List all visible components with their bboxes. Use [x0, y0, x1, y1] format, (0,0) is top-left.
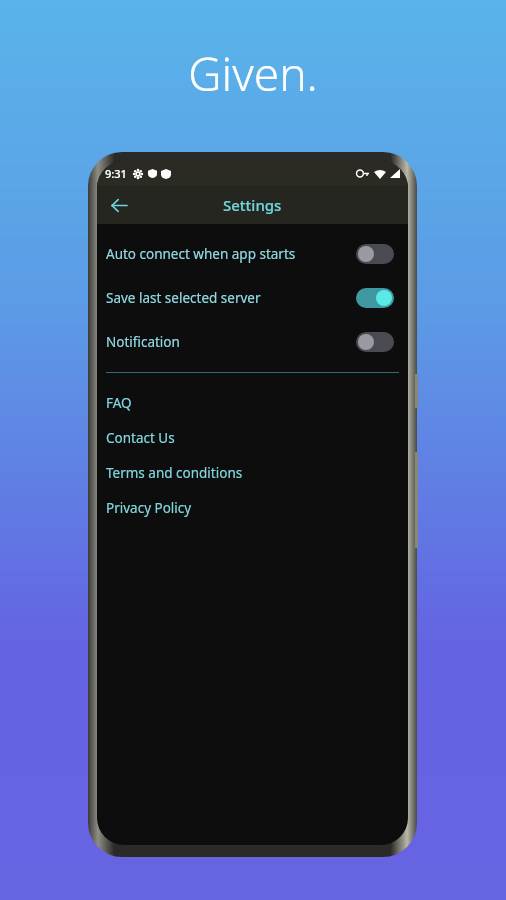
button[interactable]: FAQ [97, 385, 408, 420]
staticText: Save last selected server [106, 289, 261, 307]
button[interactable]: Back [103, 190, 133, 220]
staticText: Privacy Policy [106, 499, 192, 517]
staticText: 9:31 [105, 166, 127, 181]
staticText: Settings [223, 195, 282, 215]
button[interactable]: Terms and conditions [97, 455, 408, 490]
button[interactable]: Privacy Policy [97, 490, 408, 525]
button[interactable]: Save last selected server [97, 276, 408, 320]
button[interactable]: Contact Us [97, 420, 408, 455]
staticText: Notification [106, 333, 180, 351]
button[interactable]: Notification [97, 320, 408, 364]
staticText: Contact Us [106, 429, 175, 447]
staticText: Auto connect when app starts [106, 245, 296, 263]
staticText: Terms and conditions [106, 464, 243, 482]
staticText: Given. [0, 42, 506, 105]
staticText: FAQ [106, 394, 132, 412]
button[interactable]: Auto connect when app starts [97, 232, 408, 276]
